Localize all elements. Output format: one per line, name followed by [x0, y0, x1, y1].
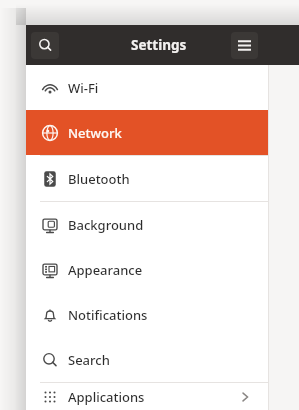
button[interactable]: Appearance [26, 247, 268, 292]
button[interactable]: Bluetooth [26, 156, 268, 201]
button[interactable]: Search [31, 32, 59, 59]
staticText: Applications [68, 388, 145, 406]
button[interactable]: Applications [26, 383, 268, 410]
button[interactable]: Background [26, 202, 268, 247]
button[interactable]: Wi-Fi [26, 65, 268, 110]
button[interactable]: Notifications [26, 292, 268, 337]
button[interactable]: Network [26, 110, 268, 155]
button[interactable]: Search [26, 337, 268, 382]
staticText: Search [68, 351, 110, 369]
staticText: Settings [131, 36, 187, 54]
staticText: Background [68, 216, 144, 234]
staticText: Notifications [68, 306, 148, 324]
staticText: Network [68, 124, 122, 142]
staticText: Wi-Fi [68, 79, 99, 97]
button[interactable]: Menu [231, 32, 258, 59]
staticText: Bluetooth [68, 170, 130, 188]
staticText: Appearance [68, 261, 143, 279]
